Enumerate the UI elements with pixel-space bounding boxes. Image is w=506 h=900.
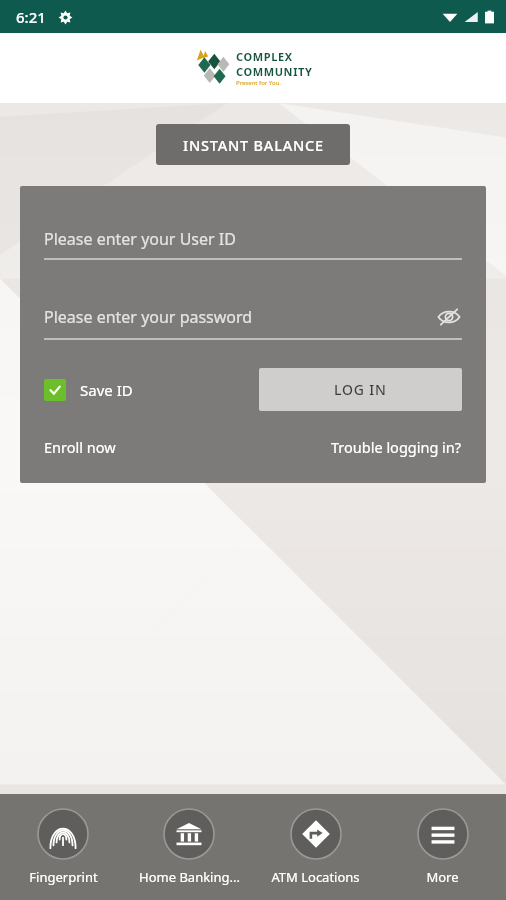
button[interactable]: LOG IN <box>259 368 462 411</box>
staticText: Home Banking... <box>139 868 240 886</box>
button[interactable]: Show password <box>436 304 462 330</box>
staticText: Present for You. <box>236 79 281 87</box>
staticText: Save ID <box>80 380 133 400</box>
staticText: ATM Locations <box>271 868 360 886</box>
staticText: Fingerprint <box>29 868 98 886</box>
staticText: INSTANT BALANCE <box>183 135 324 155</box>
button[interactable]: Enroll now <box>44 437 116 457</box>
button[interactable]: Please enter your password <box>44 304 462 340</box>
staticText: LOG IN <box>334 380 387 399</box>
staticText: Please enter your password <box>44 306 253 328</box>
button[interactable]: Fingerprint <box>0 794 126 900</box>
button[interactable]: INSTANT BALANCE <box>156 124 350 165</box>
staticText: COMPLEX <box>236 49 293 64</box>
staticText: COMMUNITY <box>236 64 313 79</box>
button[interactable]: ATM Locations <box>252 794 379 900</box>
staticText: Enroll now <box>44 437 116 457</box>
button[interactable]: Home Banking... <box>126 794 252 900</box>
button[interactable]: Save ID <box>44 375 133 405</box>
staticText: 6:21 <box>16 7 46 27</box>
staticText: Trouble logging in? <box>331 437 462 457</box>
button[interactable]: Please enter your User ID <box>44 228 462 260</box>
staticText: Please enter your User ID <box>44 228 236 250</box>
button[interactable]: Trouble logging in? <box>331 437 462 457</box>
staticText: More <box>426 868 459 886</box>
button[interactable]: More <box>379 794 506 900</box>
